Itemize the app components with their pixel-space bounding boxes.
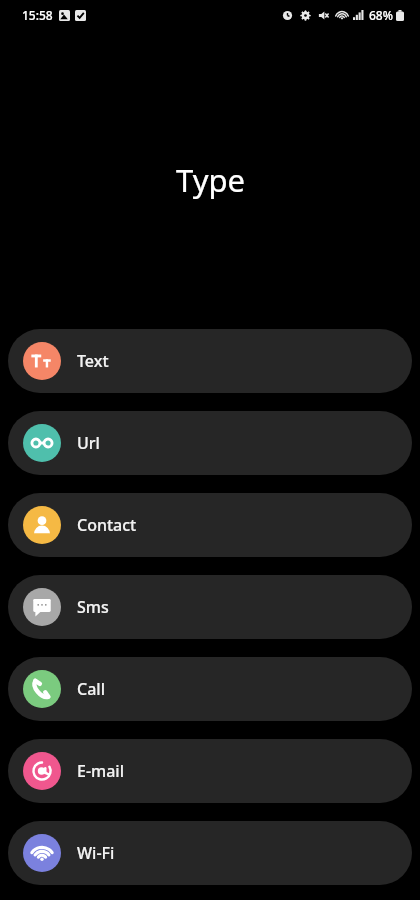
staticText: Wi-Fi	[77, 842, 115, 864]
button[interactable]: Url	[8, 411, 412, 475]
button[interactable]: Sms	[8, 575, 412, 639]
staticText: Contact	[77, 514, 137, 536]
staticText: 68%	[369, 7, 393, 23]
button[interactable]: E-mail	[8, 739, 412, 803]
button[interactable]: Text	[8, 329, 412, 393]
staticText: Sms	[77, 596, 109, 618]
staticText: Type	[176, 159, 245, 201]
staticText: Text	[77, 350, 109, 372]
button[interactable]: Contact	[8, 493, 412, 557]
staticText: E-mail	[77, 760, 124, 782]
staticText: Url	[77, 432, 100, 454]
staticText: Call	[77, 678, 105, 700]
staticText: 15:58	[22, 7, 53, 23]
button[interactable]: Call	[8, 657, 412, 721]
button[interactable]: Wi-Fi	[8, 821, 412, 885]
